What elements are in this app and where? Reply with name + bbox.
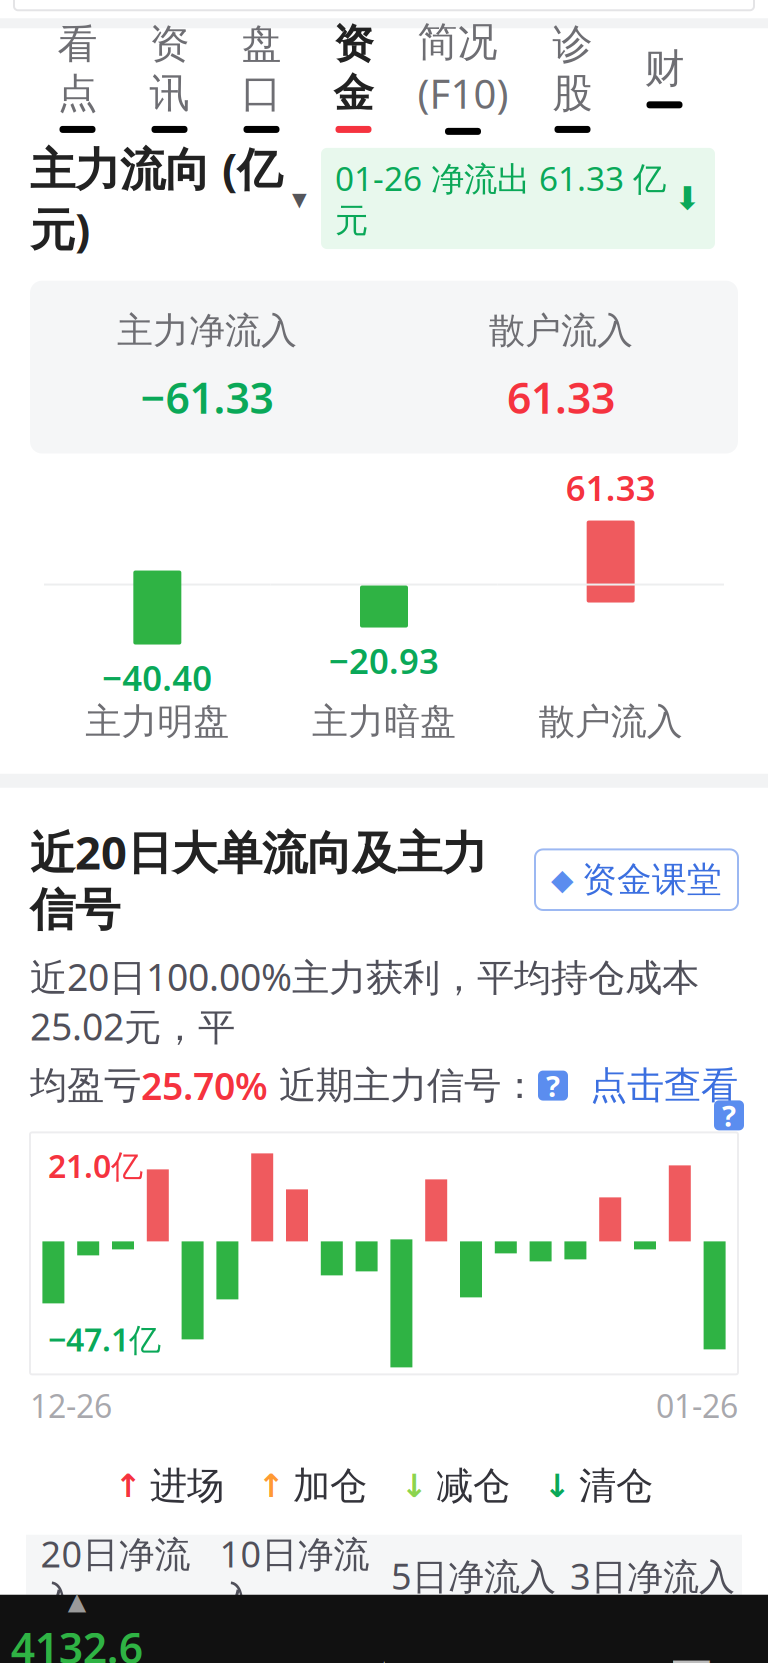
- button[interactable]: 资讯: [123, 28, 215, 124]
- staticText: −47.1亿: [48, 1318, 161, 1360]
- staticText: 财: [644, 44, 684, 93]
- button[interactable]: 看点: [31, 28, 123, 124]
- staticText: 近期主力信号：: [268, 1063, 538, 1109]
- staticText: 01-26: [656, 1384, 738, 1427]
- staticText: 盘口: [241, 20, 281, 118]
- staticText: 01-26 净流出 61.33 亿元: [335, 156, 666, 241]
- staticText: 散户流入: [489, 309, 633, 353]
- staticText: ?: [546, 1066, 560, 1105]
- staticText: ?: [722, 1096, 736, 1135]
- staticText: ↓: [401, 1468, 428, 1504]
- staticText: 进场: [150, 1463, 224, 1509]
- button[interactable]: 主力流向 (亿元): [30, 138, 307, 259]
- staticText: ▲: [68, 1588, 86, 1615]
- staticText: ▾: [292, 182, 307, 215]
- staticText: 主力净流入: [117, 309, 297, 353]
- staticText: ☆: [361, 1651, 406, 1663]
- button[interactable]: 简况(F10): [399, 28, 526, 124]
- staticText: 61.33: [507, 369, 615, 426]
- button[interactable]: 资金: [307, 28, 399, 124]
- staticText: 清仓: [579, 1463, 653, 1509]
- button[interactable]: 财: [618, 28, 710, 124]
- staticText: 近20日大单流向及主力信号: [30, 822, 487, 938]
- staticText: ☰: [669, 1651, 714, 1663]
- staticText: 4132.61: [11, 1619, 143, 1663]
- staticText: 散户流入: [539, 699, 683, 744]
- staticText: 10日净流入: [219, 1530, 369, 1622]
- button[interactable]: 盘口: [215, 28, 307, 124]
- staticText: 主力流向 (亿元): [30, 138, 282, 259]
- button[interactable]: 图表说明: [714, 1100, 744, 1130]
- staticText: ⬇: [674, 180, 701, 217]
- staticText: 12-26: [30, 1384, 112, 1427]
- button[interactable]: 诊股: [526, 28, 618, 124]
- staticText: ◆: [551, 863, 574, 896]
- staticText: 资金课堂: [582, 858, 722, 901]
- staticText: 减仓: [436, 1463, 510, 1509]
- staticText: ↑: [258, 1468, 285, 1504]
- staticText: 加仓: [293, 1463, 367, 1509]
- button[interactable]: 点击查看: [568, 1063, 738, 1109]
- staticText: 均盈亏: [30, 1063, 141, 1109]
- staticText: −20.93: [329, 637, 439, 683]
- staticText: 61.33: [566, 464, 656, 510]
- staticText: 20日净流入: [40, 1530, 190, 1622]
- staticText: 看点: [57, 20, 97, 118]
- staticText: −61.33: [140, 369, 273, 426]
- staticText: ↓: [544, 1468, 571, 1504]
- button[interactable]: 功能: [614, 1655, 768, 1663]
- staticText: ↑: [115, 1468, 142, 1504]
- staticText: 诊股: [552, 20, 592, 118]
- staticText: 21.0亿: [48, 1144, 143, 1187]
- staticText: 主力暗盘: [312, 699, 456, 744]
- staticText: 主力明盘: [85, 699, 229, 744]
- staticText: 5日净流入: [391, 1552, 556, 1600]
- button[interactable]: ◆: [535, 849, 738, 910]
- staticText: 简况(F10): [417, 18, 508, 120]
- staticText: 资金: [333, 20, 373, 118]
- button[interactable]: 01-26 净流出 61.33 亿元: [321, 148, 715, 249]
- button[interactable]: 上证指数: [0, 1588, 154, 1663]
- staticText: 点击查看: [568, 1063, 738, 1109]
- staticText: 3日净流入: [570, 1552, 735, 1600]
- staticText: 近20日100.00%主力获利，平均持仓成本25.02元，平: [30, 952, 699, 1051]
- staticText: 25.70%: [141, 1061, 268, 1110]
- button[interactable]: 社区: [307, 1655, 461, 1663]
- button[interactable]: 帮助: [538, 1071, 568, 1101]
- staticText: 资讯: [149, 20, 189, 118]
- staticText: −40.40: [102, 654, 212, 700]
